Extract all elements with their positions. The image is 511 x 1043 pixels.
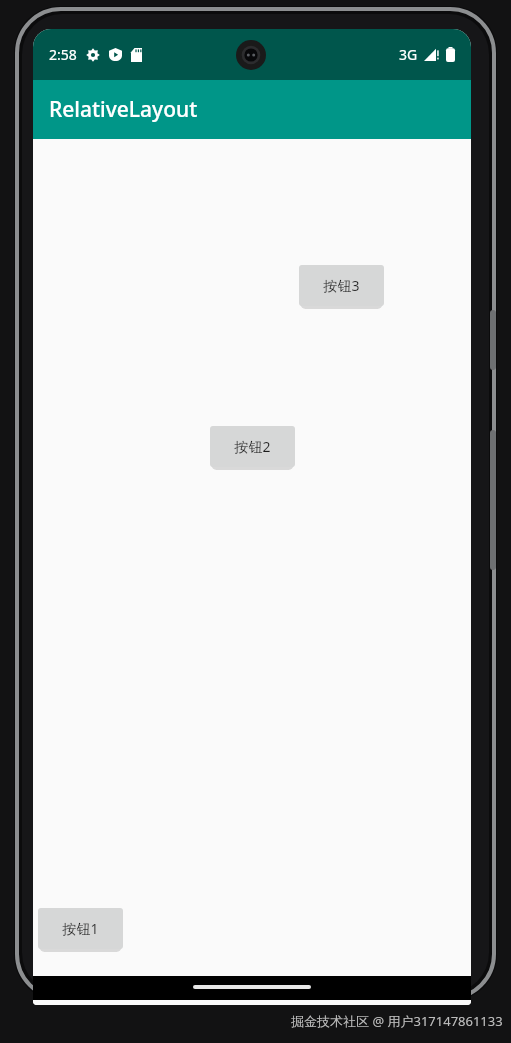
staticText: 2:58 [49,45,77,64]
button[interactable]: 按钮1 [38,908,123,949]
staticText: 掘金技术社区 @ 用户317147861133 [291,1012,503,1030]
button[interactable]: 按钮3 [299,265,384,306]
button[interactable]: 按钮2 [210,426,295,467]
staticText: 按钮1 [62,919,99,938]
staticText: 3G [399,45,418,64]
staticText: 按钮3 [323,276,360,295]
staticText: 按钮2 [234,437,271,456]
staticText: RelativeLayout [49,95,198,124]
